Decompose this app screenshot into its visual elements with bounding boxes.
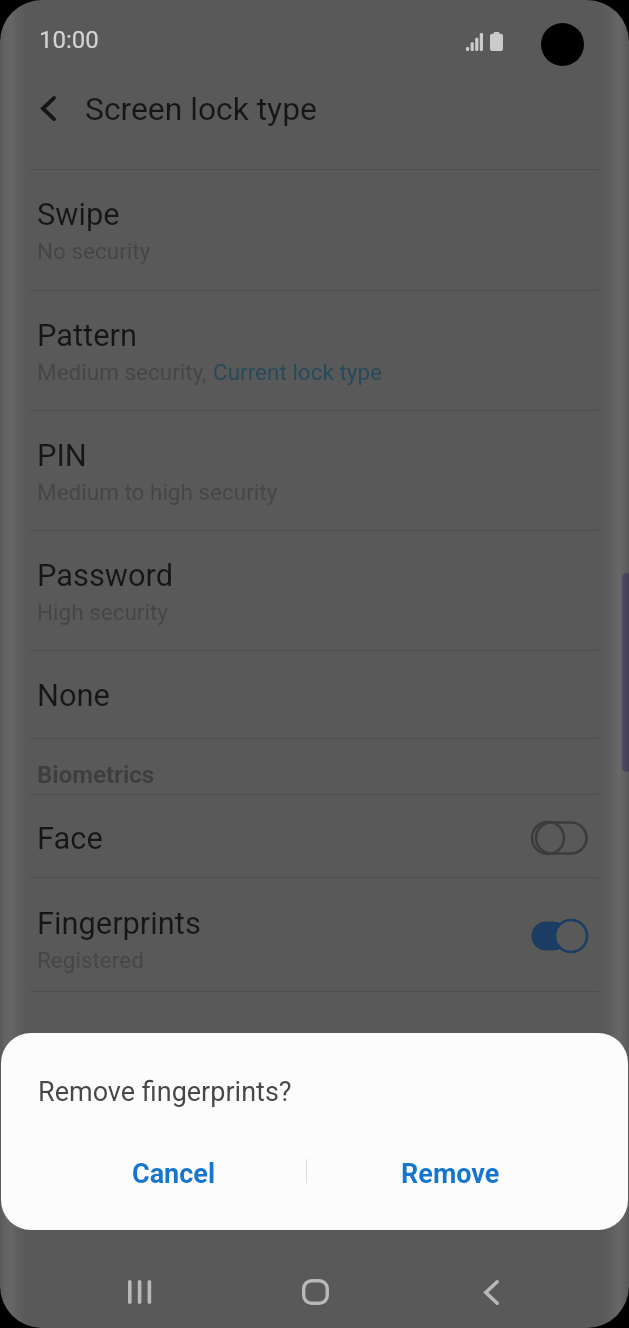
- staticText: Remove: [401, 1158, 500, 1190]
- staticText: Registered: [37, 947, 144, 973]
- staticText: Screen lock type: [85, 90, 317, 127]
- button[interactable]: Password: [0, 530, 629, 650]
- staticText: None: [37, 677, 110, 713]
- button[interactable]: Cancel: [62, 1139, 286, 1209]
- staticText: 10:00: [39, 26, 99, 54]
- button[interactable]: None: [0, 650, 629, 738]
- staticText: Pattern: [37, 317, 137, 353]
- staticText: Remove fingerprints?: [38, 1076, 292, 1108]
- staticText: Medium to high security: [37, 479, 278, 505]
- staticText: Biometrics: [37, 761, 155, 789]
- button[interactable]: Navigate up: [22, 82, 74, 134]
- button[interactable]: Back: [453, 1254, 529, 1328]
- button[interactable]: Face: [0, 794, 629, 877]
- button[interactable]: Home: [277, 1254, 353, 1328]
- button[interactable]: On: [531, 919, 588, 953]
- button[interactable]: Fingerprints: [0, 877, 629, 991]
- staticText: PIN: [37, 437, 87, 473]
- staticText: Cancel: [132, 1158, 216, 1190]
- staticText: Password: [37, 557, 174, 593]
- staticText: Current lock type: [213, 359, 383, 385]
- button[interactable]: Remove: [338, 1139, 562, 1209]
- staticText: Swipe: [37, 196, 120, 232]
- button[interactable]: PIN: [0, 410, 629, 530]
- staticText: High security: [37, 599, 168, 625]
- staticText: Fingerprints: [37, 905, 201, 941]
- staticText: No security: [37, 238, 151, 264]
- button[interactable]: Swipe: [0, 169, 629, 290]
- staticText: Face: [37, 820, 103, 856]
- staticText: Medium security,: [37, 359, 213, 385]
- button[interactable]: Recents: [101, 1254, 177, 1328]
- button[interactable]: Off: [531, 821, 588, 855]
- button[interactable]: Pattern: [0, 290, 629, 410]
